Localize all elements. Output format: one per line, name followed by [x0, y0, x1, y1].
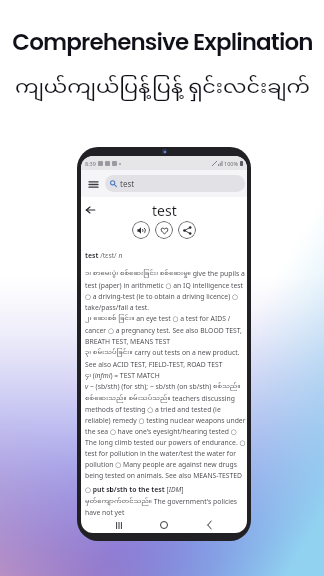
staticText: Comprehensive Explination [12, 26, 313, 58]
staticText: test [120, 178, 135, 189]
button[interactable]: Share [178, 221, 196, 239]
staticText: ကျယ်ကျယ်ပြန့်ပြန့် ရှင်းလင်းချက် [15, 74, 310, 102]
staticText: 8:39 [85, 160, 96, 167]
button[interactable]: Back [202, 518, 216, 532]
staticText: ၄၊ (infml) = TEST MATCH [85, 371, 160, 380]
staticText: ၂၊ ဆေးစစ် ခြင်း။ an eye test ○ a test fo… [85, 314, 246, 346]
button[interactable]: Recents [112, 518, 126, 532]
button[interactable]: Back [83, 203, 97, 217]
button[interactable]: Pronounce [132, 221, 150, 239]
button[interactable]: Home [157, 518, 171, 532]
staticText: v ~ (sb/sth) (for sth); ~ sb/sth (on sb/… [85, 382, 246, 480]
staticText: test [152, 201, 177, 220]
button[interactable]: test [105, 175, 245, 192]
staticText: 100% [224, 160, 239, 167]
staticText: ○ put sb/sth to the test [IDM] မှတ်ကျောက… [85, 485, 246, 517]
staticText: ၃၊ စမ်းသပ်ခြင်း။ carry out tests on a ne… [85, 348, 246, 369]
button[interactable]: Favourite [155, 221, 173, 239]
staticText: test /tɛst/ n [85, 251, 123, 260]
button[interactable]: Menu [86, 177, 100, 191]
staticText: ၁၊ စာမေးပွဲ၊ စစ်ဆေးခြင်း၊ စစ်ဆေးမှု။ giv… [85, 269, 246, 312]
